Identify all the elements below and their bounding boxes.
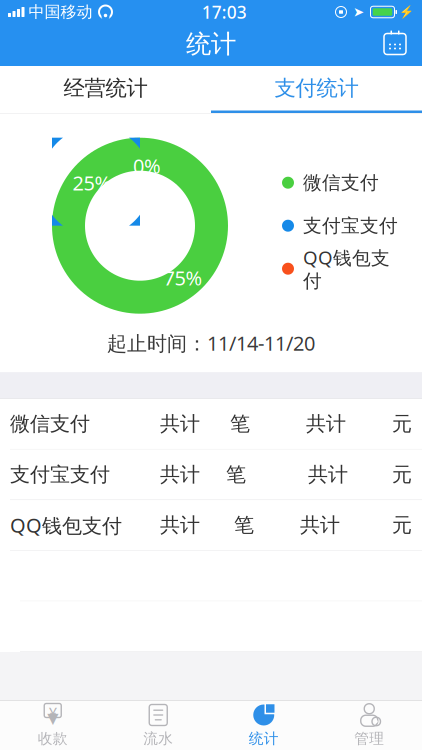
button[interactable]: 流水: [105, 701, 211, 750]
staticText: 中国移动: [28, 2, 92, 22]
staticText: ⚡: [399, 5, 414, 19]
staticText: QQ钱包支付: [10, 512, 122, 538]
staticText: 支付宝支付: [303, 214, 398, 237]
staticText: 支付宝支付: [10, 462, 110, 487]
staticText: 笔: [230, 412, 250, 436]
staticText: ¥: [49, 702, 57, 722]
button[interactable]: 管理: [316, 701, 422, 750]
staticText: 共计: [300, 513, 340, 537]
staticText: 75%: [163, 264, 202, 291]
staticText: 共计: [160, 513, 200, 537]
staticText: 17:03: [202, 0, 247, 23]
staticText: 共计: [306, 412, 346, 436]
staticText: 元: [392, 412, 412, 436]
staticText: ➤: [353, 4, 364, 19]
staticText: 共计: [160, 462, 200, 487]
staticText: 笔: [234, 513, 254, 537]
staticText: 统计: [249, 729, 279, 747]
button[interactable]: Select date range: [368, 22, 422, 66]
button[interactable]: 支付宝支付: [0, 450, 422, 500]
staticText: 起止时间：11/14-11/20: [107, 330, 315, 356]
button[interactable]: 支付统计: [211, 66, 422, 113]
staticText: 管理: [354, 729, 384, 747]
staticText: ▼: [47, 710, 58, 726]
staticText: 微信支付: [10, 412, 90, 436]
button[interactable]: ▼: [0, 701, 105, 750]
staticText: 统计: [186, 28, 236, 59]
staticText: 元: [392, 513, 412, 537]
staticText: 支付统计: [274, 75, 358, 101]
staticText: 共计: [308, 462, 348, 487]
staticText: 收款: [38, 729, 68, 747]
staticText: 微信支付: [303, 171, 379, 194]
staticText: 元: [392, 462, 412, 487]
button[interactable]: 微信支付: [0, 399, 422, 450]
staticText: 共计: [160, 412, 200, 436]
staticText: 笔: [226, 462, 246, 487]
button[interactable]: QQ钱包支付: [0, 500, 422, 551]
button[interactable]: 经营统计: [0, 66, 211, 113]
button[interactable]: 统计: [211, 701, 316, 750]
staticText: 经营统计: [63, 75, 147, 101]
staticText: 流水: [143, 729, 173, 747]
staticText: QQ钱包支付: [303, 245, 390, 293]
staticText: 25%: [72, 169, 111, 196]
staticText: 0%: [133, 152, 161, 179]
